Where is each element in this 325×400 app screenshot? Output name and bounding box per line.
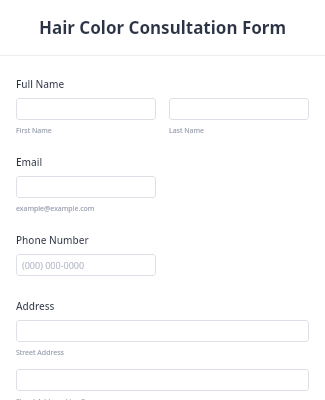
staticText: Full Name <box>16 77 65 91</box>
button[interactable]: Phone Number <box>16 254 156 276</box>
staticText: Address <box>16 299 55 313</box>
staticText: Hair Color Consultation Form <box>12 16 313 39</box>
staticText: Phone Number <box>16 233 89 247</box>
button[interactable]: First Name <box>16 98 156 120</box>
staticText: example@example.com <box>16 204 95 214</box>
button[interactable]: Last Name <box>169 98 309 120</box>
button[interactable]: Street Address Line 2 <box>16 369 309 391</box>
staticText: (000) 000-0000 <box>22 259 85 271</box>
staticText: Email <box>16 155 43 169</box>
staticText: Street Address Line 2 <box>16 397 86 400</box>
staticText: First Name <box>16 126 52 136</box>
staticText: Last Name <box>169 126 205 136</box>
button[interactable]: Street Address <box>16 320 309 342</box>
button[interactable]: Email <box>16 176 156 198</box>
staticText: Street Address <box>16 348 64 358</box>
